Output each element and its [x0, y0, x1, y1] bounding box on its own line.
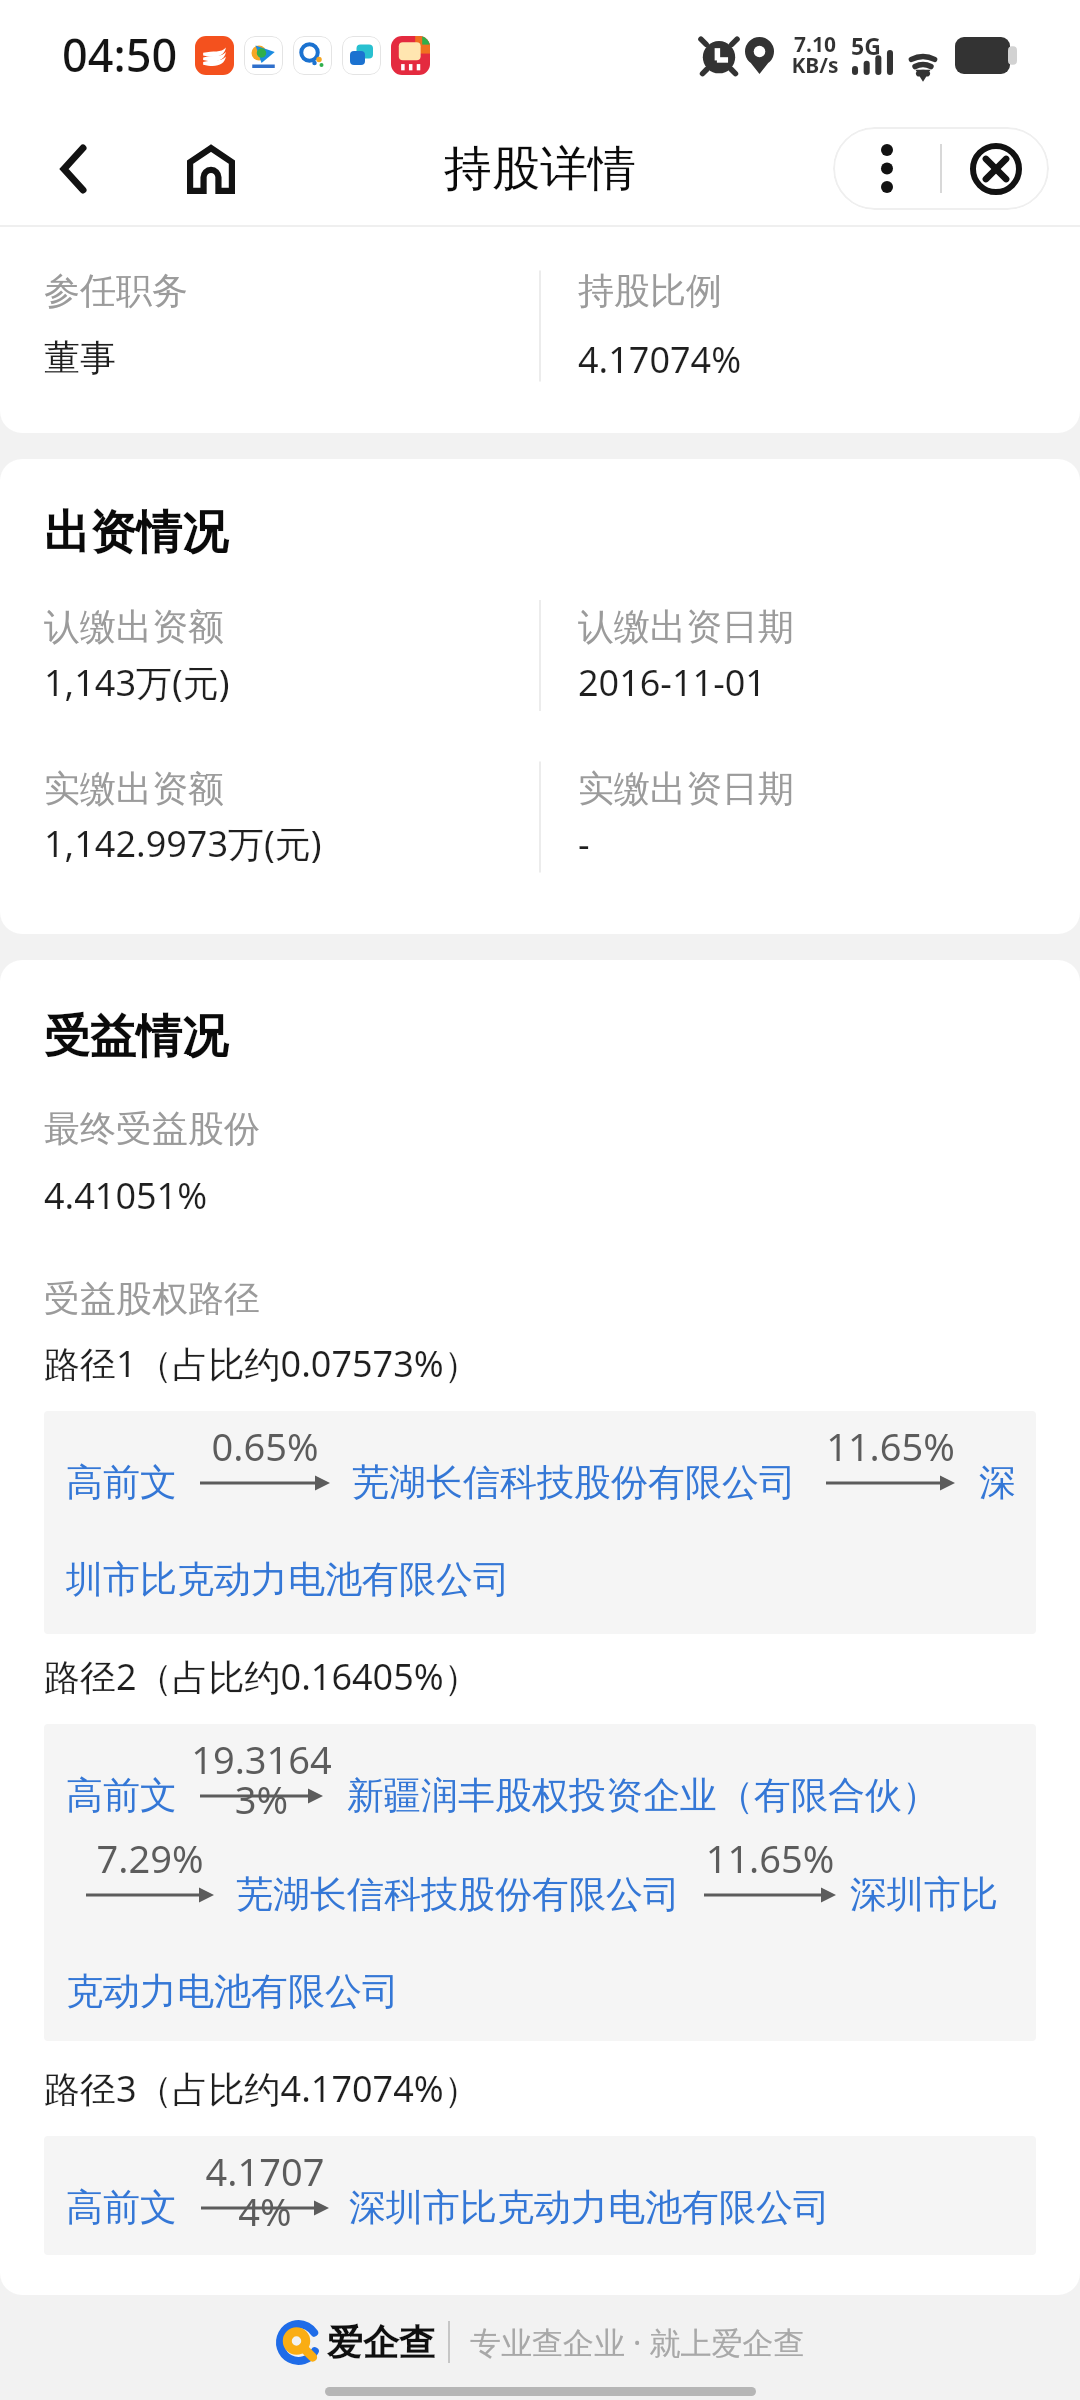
staticText: 11.65% [669, 1832, 871, 1884]
staticText: 参任职务 [44, 268, 188, 313]
button[interactable]: Home [173, 121, 249, 217]
staticText: 4.1707 4% [166, 2145, 364, 2237]
staticText: 路径3（占比约4.17074%） [44, 2064, 480, 2113]
staticText: 董事 [44, 335, 116, 380]
staticText: 路径2（占比约0.16405%） [44, 1652, 480, 1701]
staticText: 深圳市比 [850, 1871, 998, 1918]
staticText: 圳市比克动力电池有限公司 [66, 1556, 510, 1603]
staticText: 持股详情 [444, 139, 636, 199]
staticText: 7.29% [51, 1832, 249, 1884]
staticText: 持股比例 [578, 268, 722, 313]
staticText: 19.3164 3% [165, 1733, 358, 1825]
staticText: 高前文 [66, 1772, 177, 1819]
staticText: 7.10 KB/s [791, 30, 839, 80]
staticText: 实缴出资日期 [578, 766, 794, 811]
staticText: 受益情况 [44, 1008, 228, 1066]
button[interactable]: Close [942, 127, 1049, 210]
staticText: 深 [979, 1459, 1016, 1506]
staticText: 2016-11-01 [578, 658, 766, 707]
staticText: 爱企查 [327, 2320, 435, 2365]
staticText: 出资情况 [44, 504, 228, 562]
staticText: 4.17074% [578, 335, 742, 384]
staticText: 芜湖长信科技股份有限公司 [236, 1871, 680, 1918]
staticText: 最终受益股份 [44, 1106, 260, 1151]
staticText: 芜湖长信科技股份有限公司 [352, 1459, 796, 1506]
staticText: 4.41051% [44, 1171, 208, 1220]
staticText: 路径1（占比约0.07573%） [44, 1339, 480, 1388]
staticText: 专业查企业 · 就上爱企查 [470, 2321, 805, 2363]
staticText: 实缴出资额 [44, 766, 224, 811]
staticText: 受益股权路径 [44, 1276, 260, 1321]
staticText: - [578, 819, 590, 868]
staticText: 04:50 [62, 24, 178, 85]
staticText: 高前文 [66, 2184, 177, 2231]
staticText: 认缴出资日期 [578, 604, 794, 649]
staticText: 1,143万(元) [44, 658, 230, 707]
staticText: 深圳市比克动力电池有限公司 [349, 2184, 830, 2231]
staticText: 新疆润丰股权投资企业（有限合伙） [347, 1772, 939, 1819]
staticText: 1,142.9973万(元) [44, 819, 322, 868]
staticText: 认缴出资额 [44, 604, 224, 649]
staticText: 11.65% [791, 1420, 990, 1472]
button[interactable]: Back [37, 121, 110, 217]
staticText: 克动力电池有限公司 [66, 1968, 399, 2015]
staticText: 高前文 [66, 1459, 177, 1506]
staticText: 0.65% [165, 1420, 365, 1472]
staticText: 5G [851, 30, 881, 61]
button[interactable]: More options [833, 127, 940, 210]
